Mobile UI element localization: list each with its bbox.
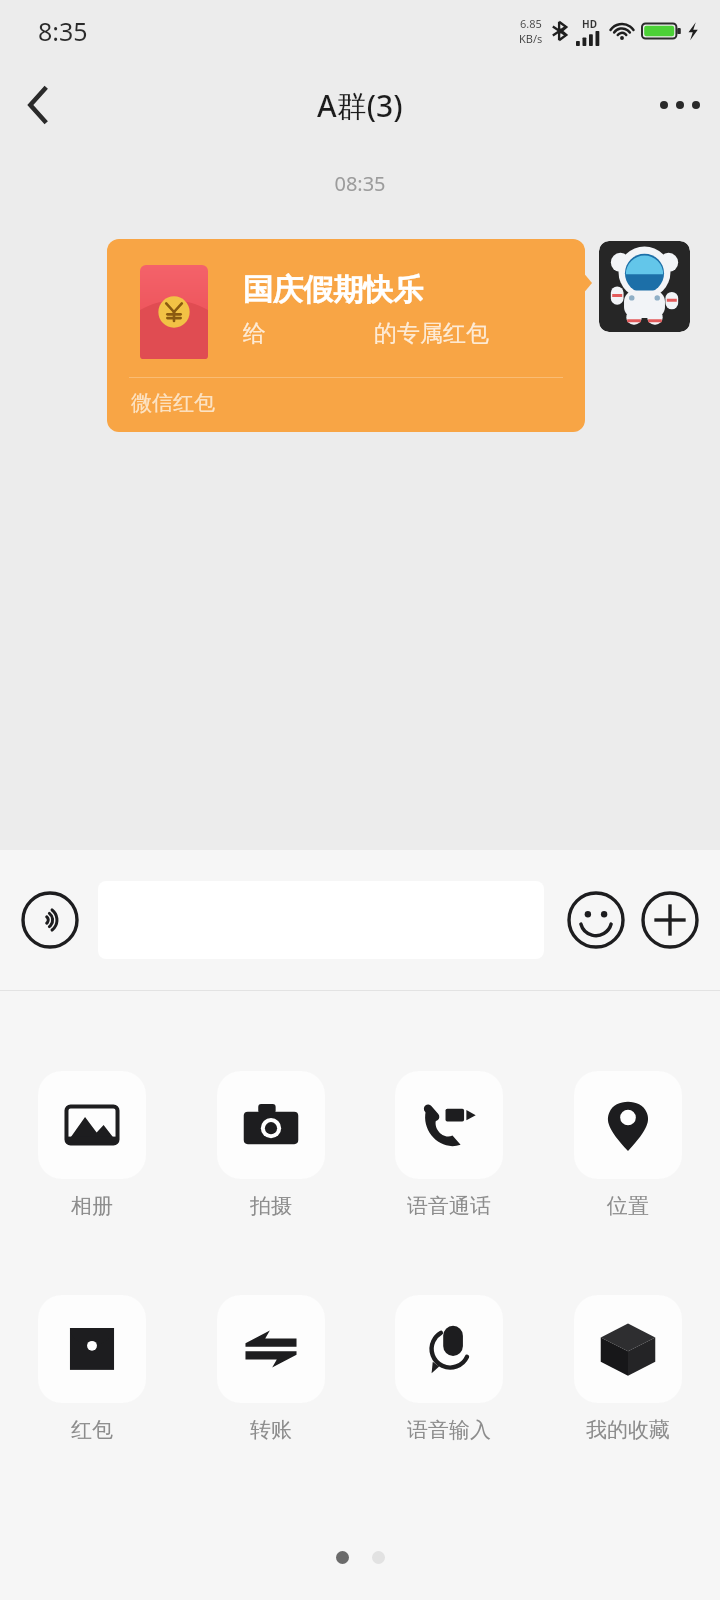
button[interactable]: Avatar xyxy=(599,241,690,332)
staticText: 微信红包 xyxy=(131,390,215,416)
button[interactable]: 位置 xyxy=(574,1071,682,1219)
staticText: 我的收藏 xyxy=(586,1417,670,1443)
button[interactable]: 红包 xyxy=(38,1295,146,1443)
button[interactable]: 相册 xyxy=(38,1071,146,1219)
staticText: 相册 xyxy=(71,1193,113,1219)
button[interactable]: Voice message xyxy=(18,888,82,952)
button[interactable]: 我的收藏 xyxy=(574,1295,682,1443)
staticText: 语音通话 xyxy=(407,1193,491,1219)
button[interactable]: 语音通话 xyxy=(395,1071,503,1219)
staticText: 的专属红包 xyxy=(374,319,489,348)
button[interactable]: 拍摄 xyxy=(217,1071,325,1219)
staticText: 位置 xyxy=(607,1193,649,1219)
staticText: HD xyxy=(582,17,597,31)
button[interactable]: More functions xyxy=(638,888,702,952)
button[interactable]: More options xyxy=(640,65,720,145)
staticText: 转账 xyxy=(250,1417,292,1443)
staticText: 拍摄 xyxy=(250,1193,292,1219)
button[interactable]: 转账 xyxy=(217,1295,325,1443)
staticText: KB/s xyxy=(519,31,543,46)
staticText: 国庆假期快乐 xyxy=(243,271,423,309)
button[interactable]: Emoji xyxy=(564,888,628,952)
button[interactable]: Back xyxy=(0,67,76,143)
staticText: 6.85 xyxy=(520,16,542,31)
staticText: 08:35 xyxy=(0,170,720,197)
staticText: 语音输入 xyxy=(407,1417,491,1443)
staticText: A群(3) xyxy=(317,85,403,126)
staticText: 红包 xyxy=(71,1417,113,1443)
button[interactable]: 国庆假期快乐 xyxy=(107,239,585,432)
staticText: 给 xyxy=(243,319,266,348)
button[interactable]: 语音输入 xyxy=(395,1295,503,1443)
staticText: 8:35 xyxy=(38,14,88,48)
